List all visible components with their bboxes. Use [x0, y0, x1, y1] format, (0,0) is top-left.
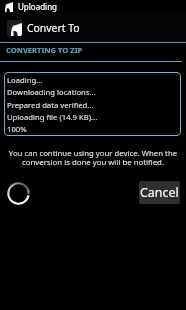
button[interactable]: App icon	[7, 20, 22, 36]
staticText: Prepared data verified...	[7, 100, 94, 110]
other: Progress	[7, 182, 30, 205]
staticText: Loading...	[7, 75, 43, 85]
staticText: Uploading	[18, 1, 58, 12]
staticText: CONVERTING TO ZIP	[6, 45, 83, 55]
staticText: Cancel	[140, 184, 179, 201]
staticText: Convert To	[27, 21, 80, 35]
staticText: Uploading file (14.9 KB)...	[7, 112, 98, 122]
staticText: You can continue using your device. When…	[0, 148, 186, 159]
staticText: 100%	[7, 124, 27, 134]
staticText: conversion is done you will be notified.	[0, 157, 186, 168]
button[interactable]: Cancel	[139, 181, 180, 204]
staticText: Downloading locations...	[7, 87, 96, 97]
